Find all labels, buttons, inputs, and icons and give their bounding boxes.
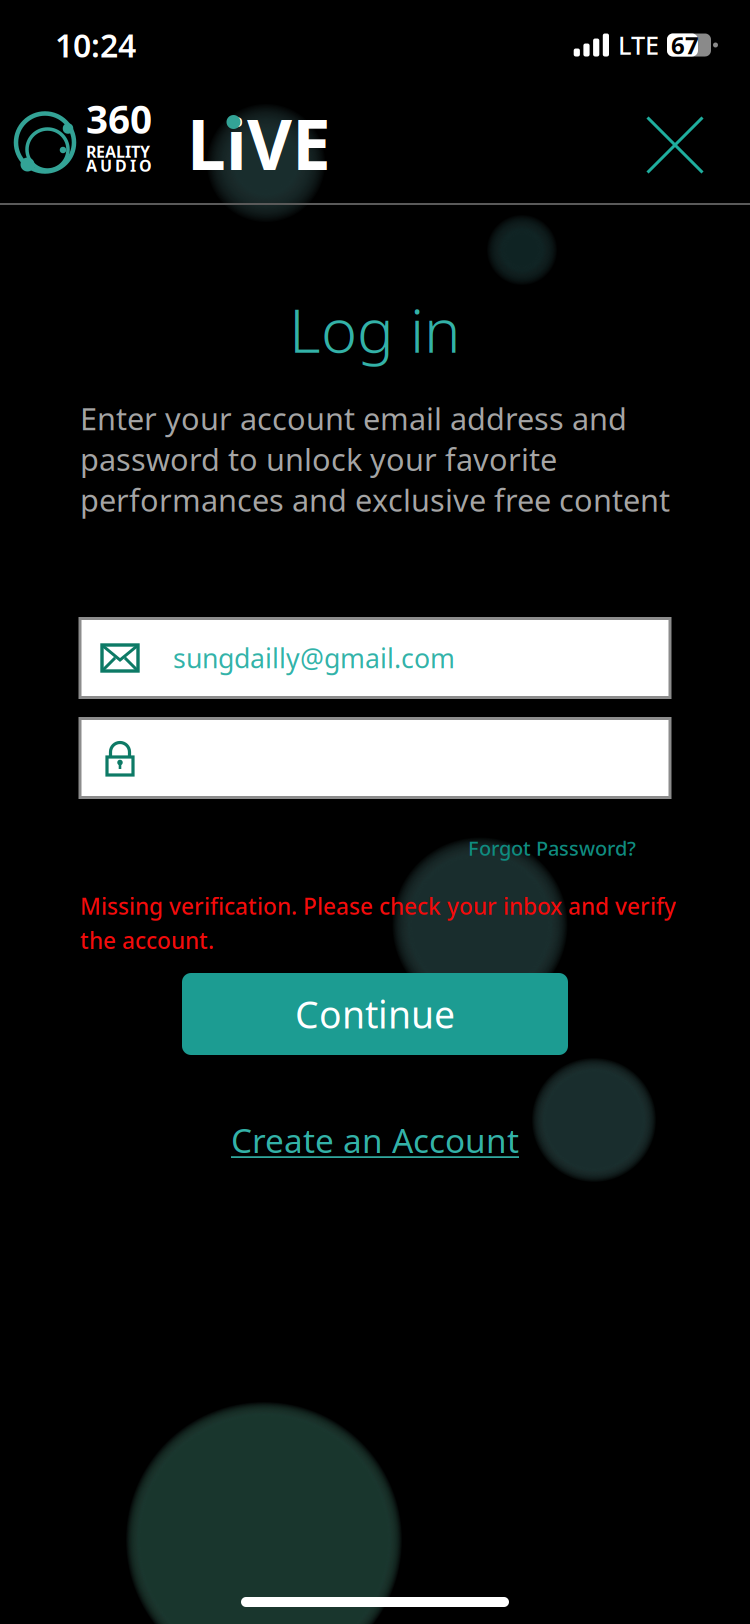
staticText: LTE xyxy=(618,28,659,62)
staticText: REALITY xyxy=(86,141,150,162)
staticText: Enter your account email address and pas… xyxy=(80,398,670,520)
button[interactable]: Continue xyxy=(182,973,568,1055)
staticText: A U D I O xyxy=(86,155,152,176)
staticText: 67 xyxy=(671,29,699,61)
staticText: Missing verification. Please check your … xyxy=(80,891,676,955)
staticText: Forgot Password? xyxy=(468,835,636,861)
staticText: LiVE xyxy=(187,97,331,189)
staticText: Log in xyxy=(289,288,461,370)
button[interactable]: Forgot Password? xyxy=(82,828,668,868)
staticText: sungdailly@gmail.com xyxy=(173,640,455,676)
button[interactable]: Close xyxy=(632,102,718,188)
staticText: Create an Account xyxy=(231,1118,519,1162)
button[interactable]: Create an Account xyxy=(205,1116,545,1164)
staticText: 10:24 xyxy=(55,24,136,66)
staticText: Continue xyxy=(295,989,455,1039)
staticText: 360 xyxy=(86,93,152,144)
